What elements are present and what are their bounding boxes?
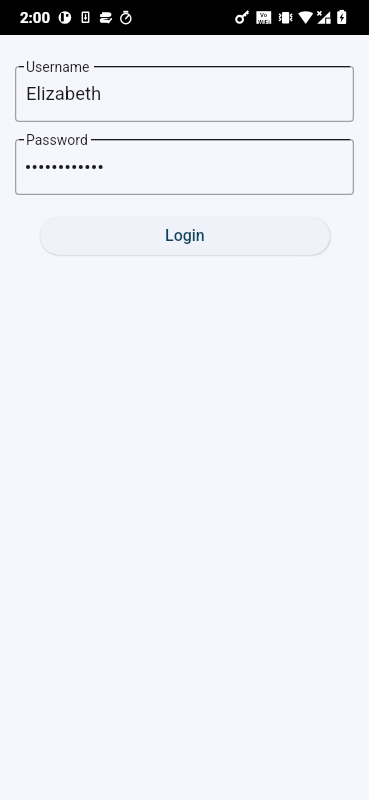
staticText: Username (26, 59, 90, 75)
staticText: Login (165, 226, 205, 245)
staticText: Elizabeth (26, 83, 102, 105)
button[interactable]: Login (40, 217, 330, 255)
staticText: Password (26, 132, 88, 148)
staticText: 2:00 (20, 9, 51, 27)
button[interactable]: Password (15, 139, 354, 195)
staticText: WiFi (258, 18, 270, 25)
staticText: Vo (260, 11, 268, 18)
button[interactable]: Username (15, 66, 354, 122)
